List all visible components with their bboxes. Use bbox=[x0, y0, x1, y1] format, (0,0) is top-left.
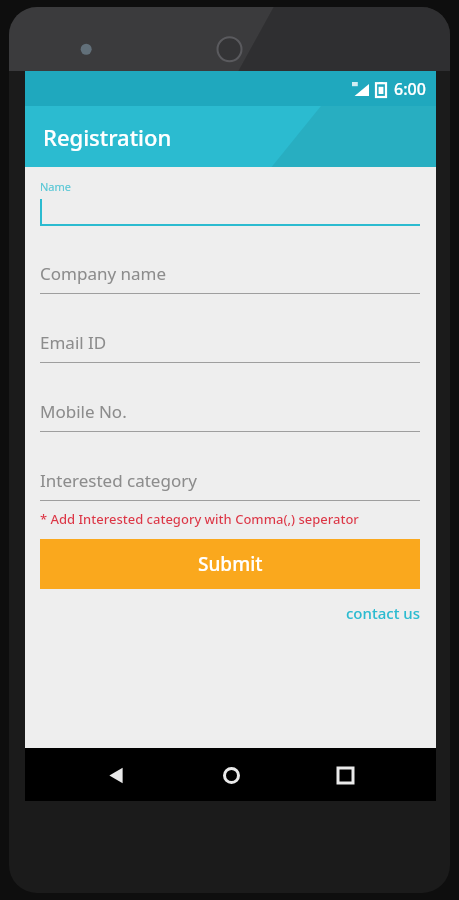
staticText: Interested category bbox=[40, 469, 197, 492]
button[interactable]: Back bbox=[93, 752, 139, 798]
staticText: * Add Interested category with Comma(,) … bbox=[40, 510, 359, 528]
button[interactable]: Interested category bbox=[40, 469, 420, 501]
button[interactable]: Recent apps bbox=[322, 752, 368, 798]
staticText: 6:00 bbox=[394, 78, 426, 100]
button[interactable]: Company name bbox=[40, 262, 420, 294]
button[interactable]: Submit bbox=[40, 539, 420, 589]
staticText: Mobile No. bbox=[40, 400, 127, 423]
staticText: Company name bbox=[40, 262, 167, 285]
staticText: Email ID bbox=[40, 331, 107, 354]
staticText: Name bbox=[40, 179, 72, 194]
button[interactable]: Mobile No. bbox=[40, 400, 420, 432]
staticText: Registration bbox=[43, 122, 172, 152]
button[interactable]: Email ID bbox=[40, 331, 420, 363]
button[interactable]: Home bbox=[208, 752, 254, 798]
button[interactable]: Name bbox=[40, 179, 420, 226]
button[interactable]: contact us bbox=[346, 603, 420, 623]
staticText: Submit bbox=[198, 551, 263, 577]
